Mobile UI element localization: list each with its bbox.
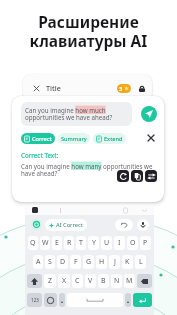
button[interactable]: E xyxy=(52,236,62,250)
button[interactable]: O xyxy=(127,236,138,250)
staticText: F xyxy=(74,257,78,267)
staticText: O xyxy=(130,238,136,248)
button[interactable]: Clipboard xyxy=(32,207,38,213)
staticText: R xyxy=(67,238,72,248)
button[interactable]: Space xyxy=(67,293,123,307)
button[interactable]: Q xyxy=(28,236,38,250)
button[interactable]: Lock xyxy=(137,84,146,93)
button[interactable]: Shift xyxy=(27,274,42,288)
button[interactable]: Undo xyxy=(115,219,133,231)
button[interactable]: X xyxy=(58,274,70,288)
button[interactable]: J xyxy=(109,255,120,269)
staticText: X xyxy=(62,276,67,286)
button[interactable]: V xyxy=(85,274,96,288)
button[interactable]: Correct xyxy=(24,133,52,144)
button[interactable]: M xyxy=(124,274,135,288)
staticText: A xyxy=(36,257,41,267)
button[interactable]: C xyxy=(72,274,83,288)
button[interactable]: Regenerate xyxy=(117,170,129,182)
button[interactable]: B xyxy=(98,274,109,288)
staticText: Q xyxy=(30,238,36,248)
button[interactable]: Voice input xyxy=(137,219,149,231)
staticText: 123 xyxy=(31,297,39,303)
button[interactable]: Period xyxy=(125,293,131,307)
button[interactable]: D xyxy=(57,255,68,269)
button[interactable]: Settings xyxy=(59,293,65,307)
button[interactable]: 123 xyxy=(27,293,42,307)
staticText: I xyxy=(118,238,121,248)
button[interactable]: S xyxy=(45,255,55,269)
staticText: D xyxy=(60,257,66,267)
button[interactable]: G xyxy=(83,255,94,269)
staticText: Summary xyxy=(61,135,87,143)
staticText: W xyxy=(42,238,49,248)
staticText: V xyxy=(88,276,93,286)
button[interactable]: R xyxy=(64,236,74,250)
button[interactable]: Backspace xyxy=(137,274,152,288)
staticText: Extend xyxy=(104,135,123,143)
staticText: Can you imagine how many opportunities w… xyxy=(21,162,153,178)
button[interactable]: Emoji xyxy=(44,293,57,307)
staticText: J xyxy=(114,257,116,267)
staticText: Y xyxy=(92,238,96,248)
button[interactable]: Summary xyxy=(61,133,87,144)
button[interactable]: Z xyxy=(44,274,56,288)
staticText: U xyxy=(104,238,110,248)
staticText: M xyxy=(126,276,133,286)
staticText: Расширение клавиатуры AI xyxy=(0,11,177,51)
button[interactable]: N xyxy=(111,274,122,288)
staticText: E xyxy=(55,238,59,248)
staticText: Correct xyxy=(32,135,52,143)
staticText: K xyxy=(125,257,130,267)
staticText: Z xyxy=(48,276,53,286)
button[interactable]: I xyxy=(114,236,125,250)
staticText: Title xyxy=(46,83,61,93)
staticText: B xyxy=(101,276,106,286)
staticText: Can you imagine how much opportunities w… xyxy=(25,106,113,122)
staticText: L xyxy=(139,257,143,267)
staticText: G xyxy=(86,257,92,267)
button[interactable]: K xyxy=(122,255,133,269)
button[interactable]: H xyxy=(96,255,107,269)
button[interactable]: P xyxy=(140,236,151,250)
staticText: N xyxy=(114,276,120,286)
button[interactable]: A xyxy=(33,255,43,269)
button[interactable]: U xyxy=(101,236,112,250)
staticText: C xyxy=(75,276,80,286)
button[interactable]: AI Correct xyxy=(49,219,83,231)
staticText: S xyxy=(48,257,52,267)
button[interactable]: Close xyxy=(31,83,42,94)
button[interactable]: Dismiss xyxy=(145,132,157,144)
button[interactable]: AI assistant xyxy=(31,219,42,230)
button[interactable]: Send xyxy=(141,106,157,122)
button[interactable]: T xyxy=(76,236,86,250)
button[interactable]: Copy xyxy=(131,170,143,182)
staticText: P xyxy=(143,238,148,248)
button[interactable]: Extend xyxy=(96,133,123,144)
staticText: Correct Text: xyxy=(21,151,59,159)
staticText: AI Correct xyxy=(56,221,83,229)
button[interactable]: Replace xyxy=(145,170,157,182)
button[interactable]: W xyxy=(40,236,50,250)
button[interactable]: L xyxy=(135,255,146,269)
button[interactable]: 3 xyxy=(119,84,129,93)
staticText: H xyxy=(99,257,105,267)
staticText: T xyxy=(79,238,83,248)
button[interactable]: F xyxy=(70,255,81,269)
staticText: 3 xyxy=(119,85,123,93)
button[interactable]: Enter xyxy=(133,293,152,307)
button[interactable]: Y xyxy=(88,236,99,250)
